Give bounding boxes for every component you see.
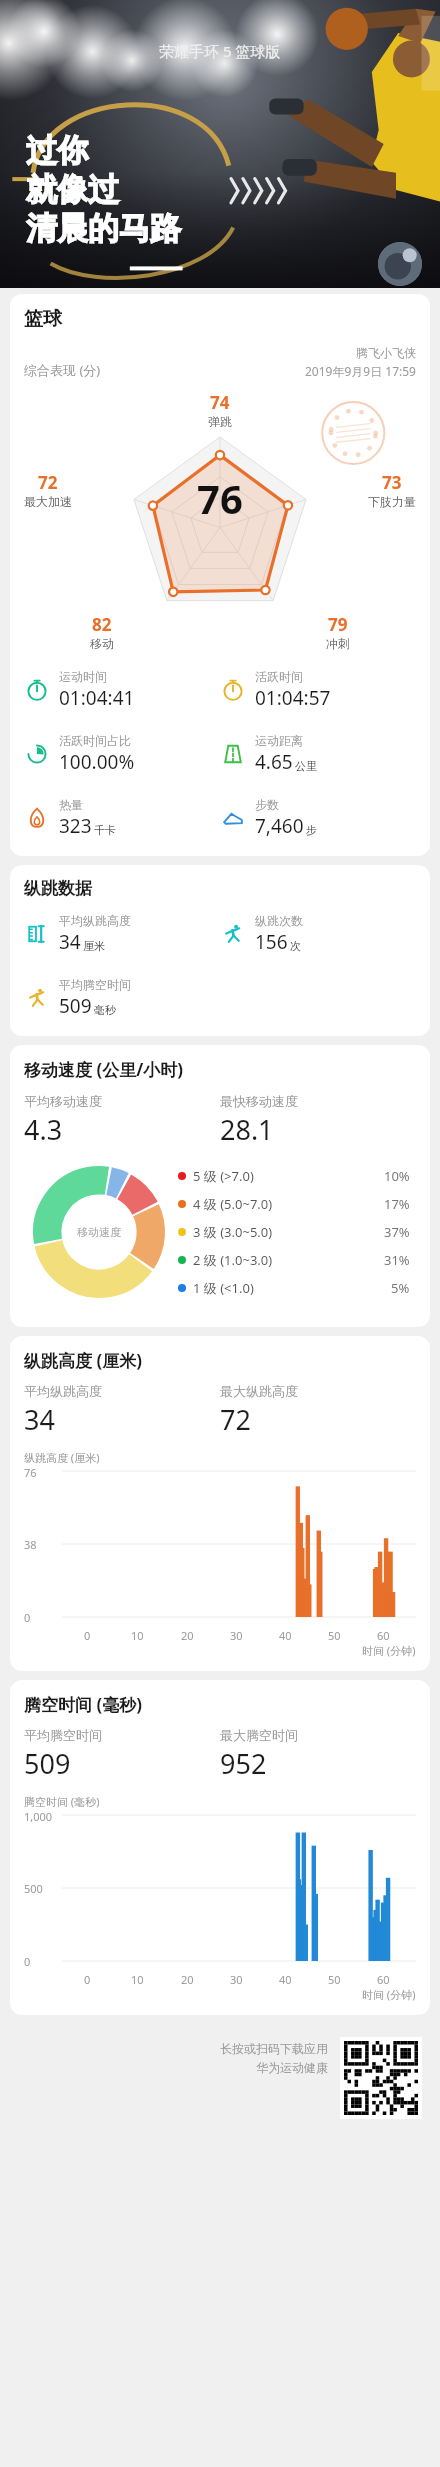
staticText: 72 <box>38 471 58 494</box>
staticText: 时间 (分钟) <box>362 1643 416 1658</box>
staticText: 篮球 <box>24 307 62 331</box>
staticText: 步 <box>306 823 317 837</box>
staticText: 移动速度 (公里/小时) <box>24 1058 184 1081</box>
staticText: 73 <box>382 471 402 494</box>
staticText: 82 <box>92 613 112 636</box>
staticText: 40 <box>279 1972 292 1987</box>
staticText: 01:04:57 <box>255 685 331 711</box>
staticText: 4.65 <box>255 749 293 775</box>
staticText: 500 <box>24 1881 43 1896</box>
staticText: 7,460 <box>255 813 304 839</box>
staticText: 活跃时间 <box>255 669 303 684</box>
staticText: 60 <box>377 1972 390 1987</box>
staticText: 2 级 (1.0~3.0) <box>193 1251 273 1269</box>
staticText: 清晨的马路 <box>26 209 181 248</box>
button[interactable]: 步数 <box>220 797 416 839</box>
staticText: 01:04:41 <box>59 685 135 711</box>
staticText: 腾空时间 (毫秒) <box>24 1693 142 1716</box>
staticText: 50 <box>328 1628 341 1643</box>
button[interactable]: 腾空时间 (毫秒) <box>10 1680 430 2015</box>
staticText: 纵跳数据 <box>24 878 92 899</box>
staticText: 次 <box>290 939 301 953</box>
staticText: 76 <box>197 471 243 525</box>
staticText: 毫秒 <box>94 1003 116 1017</box>
staticText: 千卡 <box>94 823 116 837</box>
button[interactable]: 纵跳数据 <box>10 865 430 1036</box>
staticText: 4.3 <box>24 1111 63 1148</box>
staticText: 平均腾空时间 <box>59 977 131 992</box>
button[interactable]: 用户头像 <box>378 242 422 286</box>
staticText: 0 <box>24 1954 31 1969</box>
staticText: 3 级 (3.0~5.0) <box>193 1223 273 1241</box>
staticText: 移动速度 <box>77 1225 121 1239</box>
staticText: 28.1 <box>220 1111 274 1148</box>
staticText: 最大加速 <box>24 494 72 509</box>
staticText: 荣耀手环 5 篮球版 <box>159 41 281 61</box>
staticText: 30 <box>230 1628 243 1643</box>
staticText: 34 <box>59 929 81 955</box>
staticText: 纵跳高度 (厘米) <box>24 1349 142 1372</box>
staticText: 纵跳高度 (厘米) <box>24 1450 100 1465</box>
button[interactable]: 运动距离 <box>220 733 416 775</box>
staticText: 50 <box>328 1972 341 1987</box>
staticText: 步数 <box>255 797 279 812</box>
button[interactable]: 平均腾空时间 <box>24 977 220 1019</box>
staticText: 华为运动健康 <box>256 2060 328 2075</box>
staticText: 952 <box>220 1745 267 1782</box>
staticText: 弹跳 <box>208 414 232 429</box>
staticText: 79 <box>328 613 348 636</box>
staticText: 72 <box>220 1401 251 1438</box>
button[interactable]: 热量 <box>24 797 220 839</box>
staticText: 4 级 (5.0~7.0) <box>193 1195 273 1213</box>
staticText: 10% <box>384 1167 410 1185</box>
staticText: 就像过 <box>26 170 119 209</box>
staticText: 34 <box>24 1401 55 1438</box>
staticText: 纵跳次数 <box>255 913 303 928</box>
staticText: 40 <box>279 1628 292 1643</box>
staticText: 37% <box>384 1223 410 1241</box>
staticText: 17% <box>384 1195 410 1213</box>
staticText: 100.00% <box>59 749 135 775</box>
staticText: 1 级 (<1.0) <box>193 1279 254 1297</box>
staticText: 5 级 (>7.0) <box>193 1167 254 1185</box>
button[interactable]: 纵跳次数 <box>220 913 416 955</box>
staticText: 0 <box>24 1610 31 1625</box>
staticText: 76 <box>24 1465 37 1480</box>
staticText: 热量 <box>59 797 83 812</box>
staticText: 2019年9月9日 17:59 <box>305 363 416 379</box>
staticText: 323 <box>59 813 92 839</box>
staticText: 31% <box>384 1251 410 1269</box>
staticText: 厘米 <box>83 939 105 953</box>
staticText: 下肢力量 <box>368 494 416 509</box>
staticText: 60 <box>377 1628 390 1643</box>
staticText: 10 <box>131 1628 144 1643</box>
staticText: 30 <box>230 1972 243 1987</box>
button[interactable]: 下载二维码 <box>344 2041 418 2115</box>
staticText: 腾空时间 (毫秒) <box>24 1794 100 1809</box>
staticText: 移动 <box>90 636 114 651</box>
staticText: 最大腾空时间 <box>220 1727 298 1743</box>
staticText: 平均纵跳高度 <box>24 1383 102 1399</box>
staticText: 公里 <box>295 759 317 773</box>
button[interactable]: 活跃时间占比 <box>24 733 220 775</box>
staticText: 活跃时间占比 <box>59 733 131 748</box>
staticText: 509 <box>24 1745 71 1782</box>
staticText: 74 <box>210 391 230 414</box>
staticText: 平均纵跳高度 <box>59 913 131 928</box>
staticText: 时间 (分钟) <box>362 1987 416 2002</box>
staticText: 0 <box>84 1972 91 1987</box>
button[interactable]: 平均纵跳高度 <box>24 913 220 955</box>
staticText: 1,000 <box>24 1809 53 1824</box>
button[interactable]: 移动速度 (公里/小时) <box>10 1045 430 1327</box>
button[interactable]: 运动时间 <box>24 669 220 711</box>
staticText: 综合表现 (分) <box>24 361 101 379</box>
button[interactable]: 活跃时间 <box>220 669 416 711</box>
staticText: 20 <box>181 1628 194 1643</box>
staticText: 平均移动速度 <box>24 1093 102 1109</box>
staticText: 腾飞小飞侠 <box>356 345 416 360</box>
button[interactable]: 篮球 <box>10 294 430 856</box>
staticText: 过你 <box>26 131 88 170</box>
staticText: 20 <box>181 1972 194 1987</box>
staticText: 冲刺 <box>326 636 350 651</box>
button[interactable]: 纵跳高度 (厘米) <box>10 1336 430 1671</box>
